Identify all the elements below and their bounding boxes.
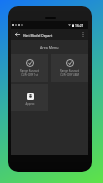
staticText: Range Kurzová [60,69,79,73]
button[interactable]: Approx [11,84,48,111]
button[interactable]: Range Kurzová [51,54,88,82]
staticText: ČUPr DRY 1st [21,73,38,77]
staticText: Area Menu [40,45,59,50]
staticText: Approx [25,102,35,106]
button[interactable]: Back [12,29,22,40]
staticText: Range Kurzová [20,69,39,73]
staticText: Hint Model Depart [23,33,53,37]
staticText: ČUPr DRY 4BM [60,73,79,77]
button[interactable]: More options [79,29,87,40]
button[interactable]: Range Kurzová [11,54,48,82]
staticText: 16:21 [75,23,84,28]
